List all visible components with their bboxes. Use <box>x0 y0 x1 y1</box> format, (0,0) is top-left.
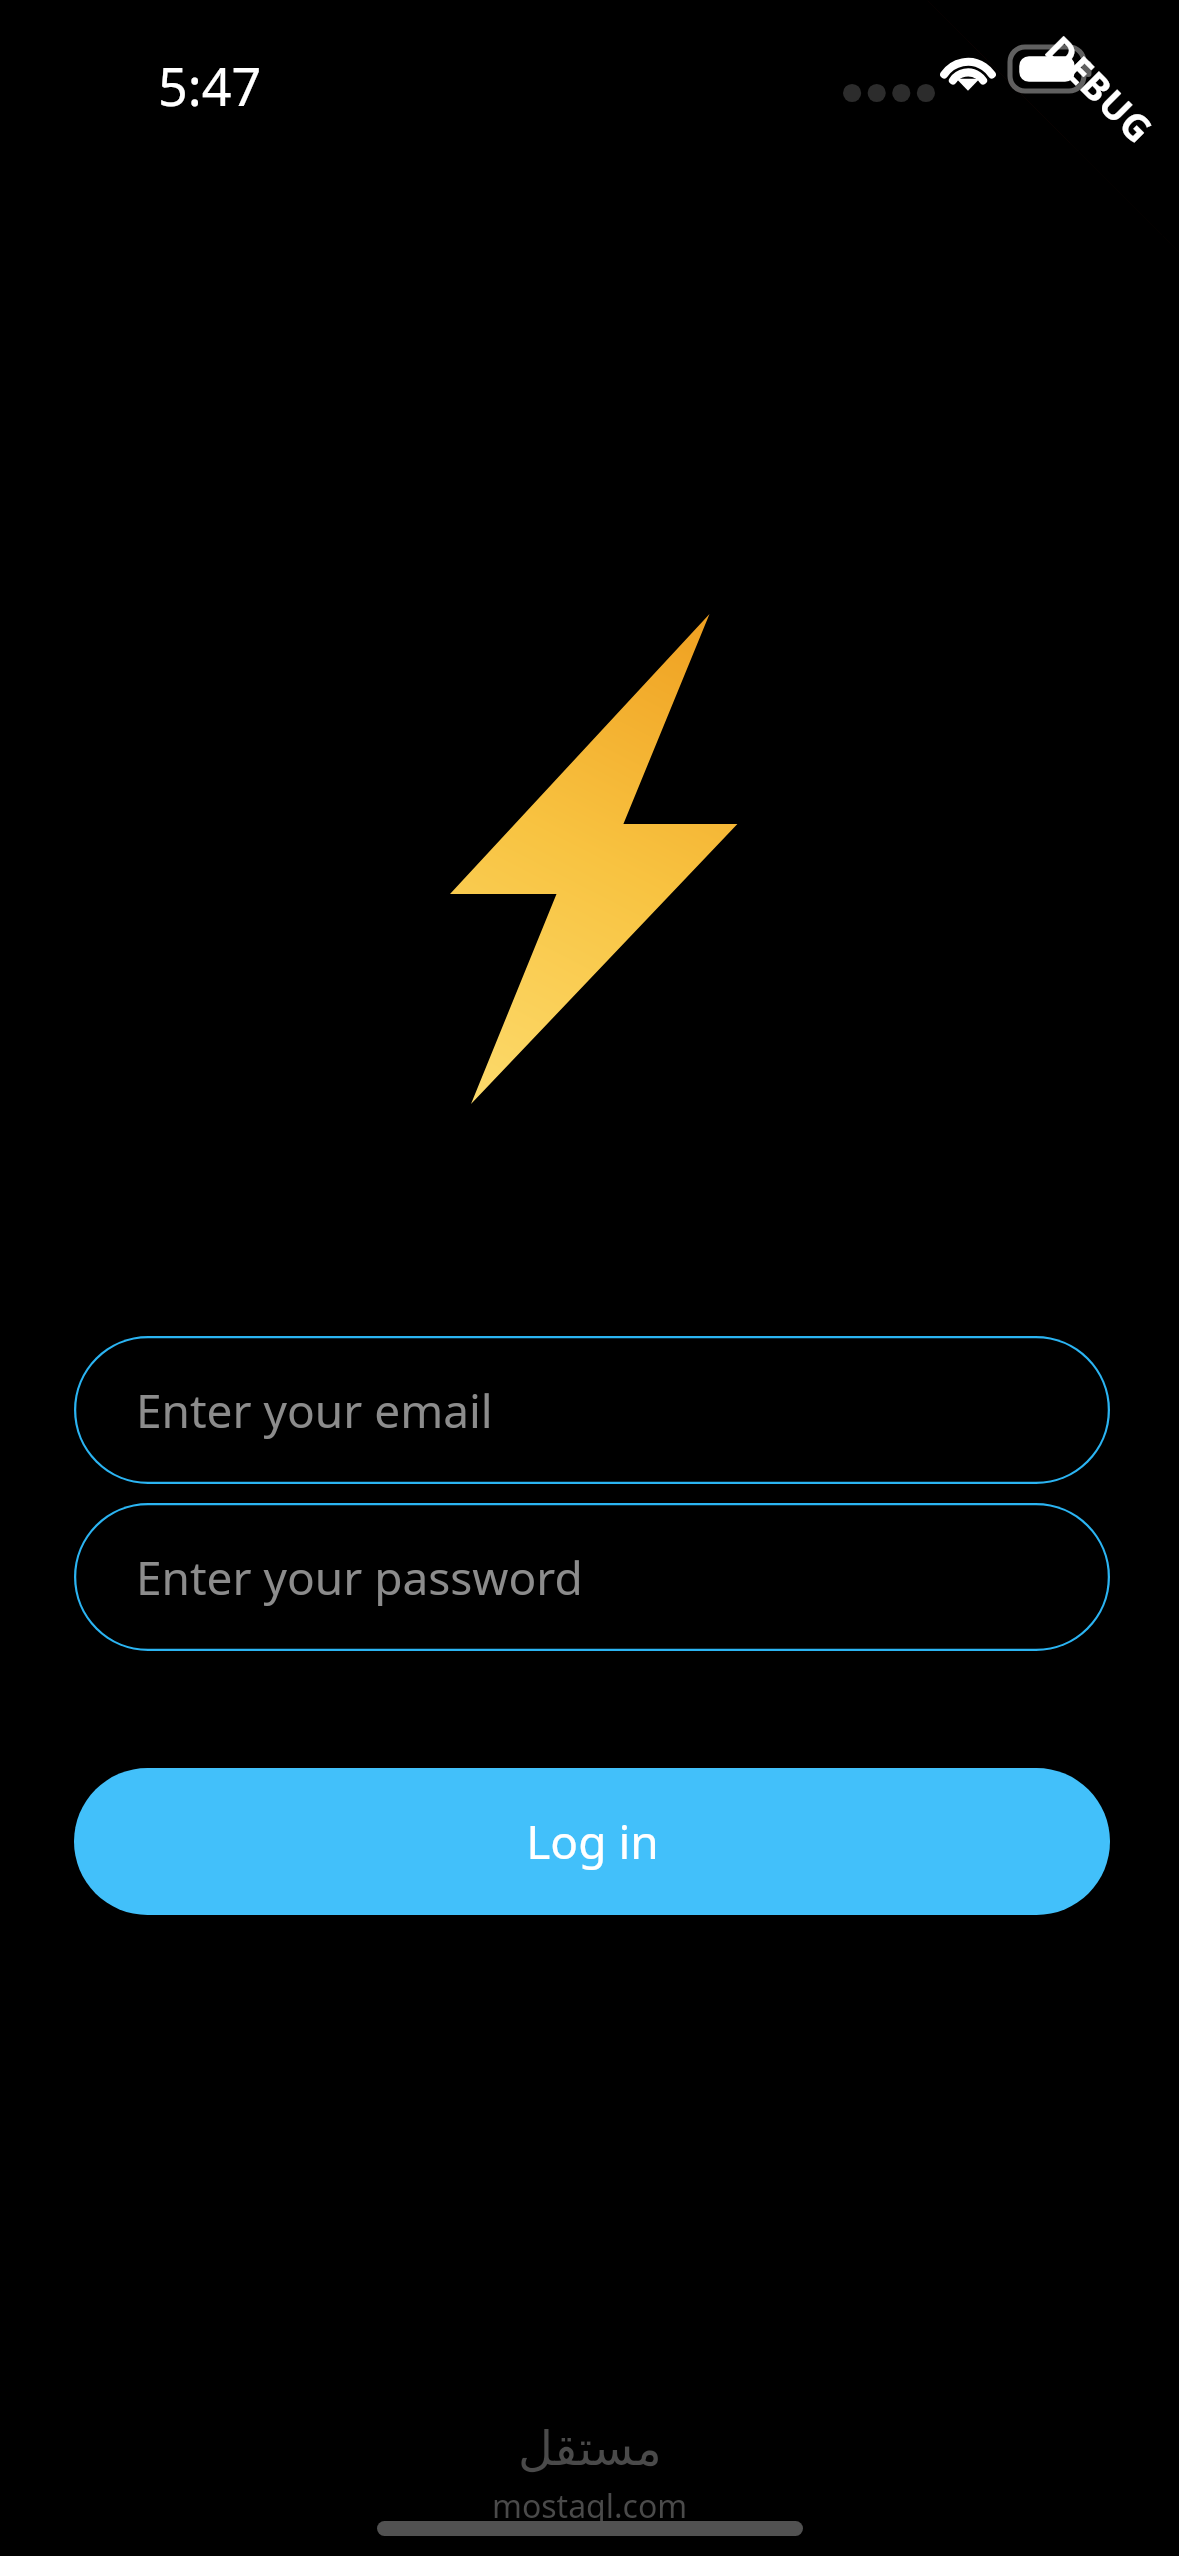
staticText: 5:47 <box>158 50 262 121</box>
button[interactable]: Enter your email <box>74 1336 1110 1484</box>
button[interactable]: Enter your password <box>74 1503 1110 1651</box>
staticText: Enter your password <box>136 1546 583 1609</box>
staticText: Enter your email <box>136 1379 493 1442</box>
staticText: Log in <box>526 1810 659 1873</box>
staticText: mostaql.com <box>492 2484 688 2528</box>
button[interactable]: Log in <box>74 1768 1110 1915</box>
staticText: مستقل <box>518 2420 662 2476</box>
staticText: DEBUG <box>1036 24 1165 154</box>
other: App logo <box>438 608 738 1108</box>
